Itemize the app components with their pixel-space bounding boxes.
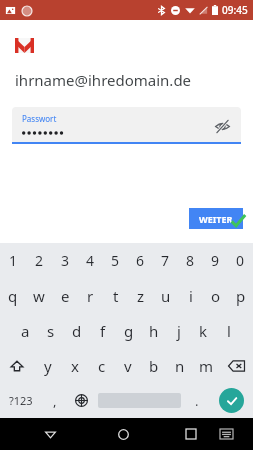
button[interactable]: p xyxy=(228,278,253,313)
staticText: w xyxy=(33,286,45,306)
button[interactable]: o xyxy=(203,278,228,313)
staticText: k xyxy=(199,321,208,341)
staticText: e xyxy=(61,286,70,306)
staticText: f xyxy=(100,321,106,341)
button[interactable]: , xyxy=(42,383,68,418)
staticText: y xyxy=(44,356,52,376)
staticText: p xyxy=(236,286,246,306)
button[interactable]: x xyxy=(61,348,88,383)
button[interactable]: Zurück xyxy=(35,419,65,449)
button[interactable]: Startbildschirm xyxy=(108,419,138,449)
staticText: z xyxy=(137,286,145,306)
button[interactable]: 3 xyxy=(52,243,78,278)
staticText: s xyxy=(47,321,55,341)
staticText: 4 xyxy=(86,251,95,270)
button[interactable]: u xyxy=(153,278,178,313)
button[interactable]: Umschalttaste xyxy=(0,348,34,383)
staticText: 7 xyxy=(161,251,170,270)
staticText: . xyxy=(195,392,199,410)
button[interactable]: z xyxy=(128,278,153,313)
button[interactable]: h xyxy=(141,313,166,348)
staticText: c xyxy=(98,356,106,376)
staticText: m xyxy=(199,356,214,376)
button[interactable]: 1 xyxy=(0,243,26,278)
button[interactable]: Fertig xyxy=(209,383,253,418)
button[interactable]: r xyxy=(78,278,103,313)
staticText: ihrname@ihredomain.de xyxy=(15,70,192,90)
staticText: 9 xyxy=(211,251,220,270)
button[interactable]: 9 xyxy=(203,243,228,278)
button[interactable]: k xyxy=(191,313,216,348)
button[interactable]: ?123 xyxy=(0,383,42,418)
button[interactable]: 4 xyxy=(78,243,103,278)
button[interactable]: WEITER xyxy=(189,208,243,229)
button[interactable]: b xyxy=(141,348,167,383)
button[interactable]: Übersicht xyxy=(176,419,206,449)
staticText: x xyxy=(71,356,79,376)
button[interactable]: 7 xyxy=(153,243,178,278)
staticText: l xyxy=(227,321,231,341)
staticText: b xyxy=(149,356,159,376)
button[interactable]: i xyxy=(178,278,203,313)
staticText: 8 xyxy=(186,251,195,270)
staticText: q xyxy=(8,286,18,306)
button[interactable]: v xyxy=(115,348,141,383)
button[interactable]: Sprache wechseln xyxy=(68,383,94,418)
staticText: g xyxy=(124,321,134,341)
button[interactable]: a xyxy=(12,313,38,348)
staticText: d xyxy=(72,321,82,341)
button[interactable]: Tastatur schließen xyxy=(211,419,241,449)
button[interactable]: c xyxy=(88,348,115,383)
button[interactable]: m xyxy=(193,348,219,383)
staticText: i xyxy=(189,286,193,306)
staticText: 09:45 xyxy=(222,3,248,17)
button[interactable]: 5 xyxy=(103,243,128,278)
staticText: a xyxy=(21,321,30,341)
staticText: v xyxy=(124,356,132,376)
button[interactable]: w xyxy=(26,278,52,313)
button[interactable]: s xyxy=(38,313,64,348)
staticText: t xyxy=(113,286,119,306)
button[interactable]: j xyxy=(166,313,191,348)
button[interactable]: l xyxy=(216,313,241,348)
staticText: 3 xyxy=(61,251,70,270)
staticText: Passwort xyxy=(22,113,57,124)
button[interactable]: f xyxy=(90,313,116,348)
staticText: o xyxy=(211,286,221,306)
staticText: r xyxy=(87,286,94,306)
button[interactable]: Passwort anzeigen xyxy=(211,115,233,137)
staticText: h xyxy=(149,321,159,341)
staticText: 5 xyxy=(111,251,120,270)
button[interactable]: n xyxy=(167,348,193,383)
staticText: 1 xyxy=(9,251,18,270)
staticText: ?123 xyxy=(9,393,33,408)
button[interactable]: g xyxy=(116,313,141,348)
button[interactable]: 0 xyxy=(228,243,253,278)
staticText: j xyxy=(177,321,181,341)
button[interactable]: 8 xyxy=(178,243,203,278)
staticText: u xyxy=(161,286,171,306)
button[interactable]: e xyxy=(52,278,78,313)
button[interactable]: Passwort xyxy=(12,107,241,144)
staticText: 6 xyxy=(136,251,145,270)
staticText: n xyxy=(175,356,185,376)
staticText: WEITER xyxy=(199,213,233,225)
button[interactable]: 2 xyxy=(26,243,52,278)
staticText: 0 xyxy=(236,251,245,270)
button[interactable]: . xyxy=(185,383,209,418)
button[interactable]: d xyxy=(64,313,90,348)
staticText: 2 xyxy=(35,251,44,270)
staticText: , xyxy=(53,392,57,410)
button[interactable]: t xyxy=(103,278,128,313)
button[interactable]: q xyxy=(0,278,26,313)
button[interactable]: Löschen xyxy=(219,348,253,383)
button[interactable]: 6 xyxy=(128,243,153,278)
button[interactable]: y xyxy=(34,348,61,383)
